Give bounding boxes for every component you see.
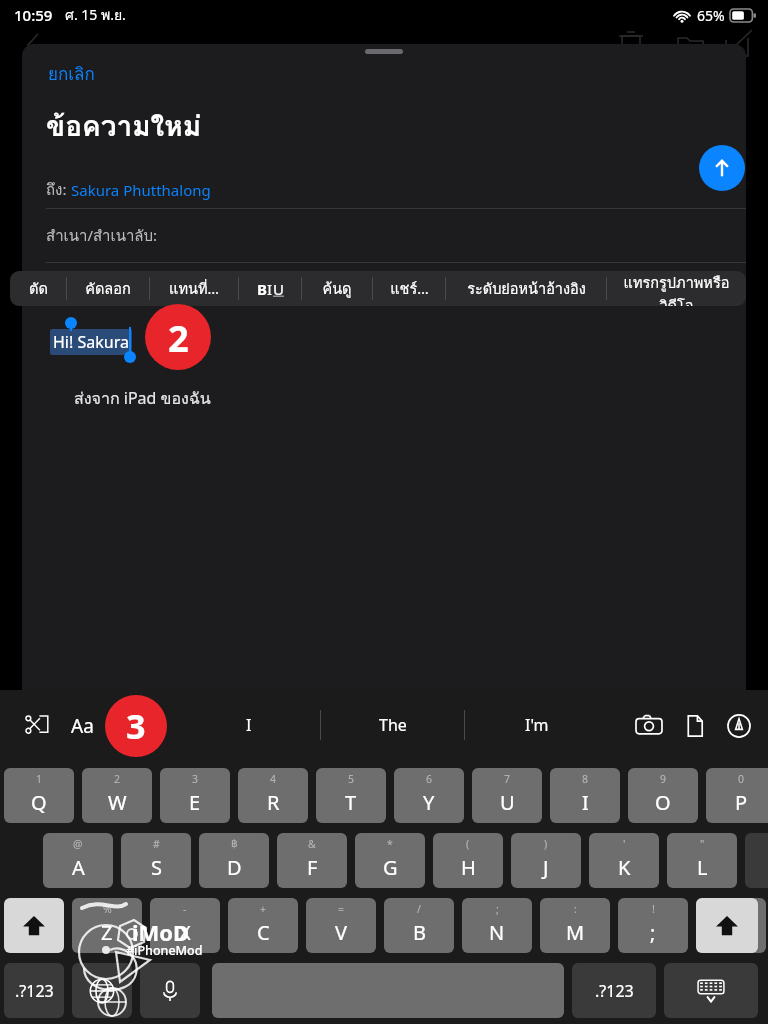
- button[interactable]: 8: [550, 768, 620, 823]
- staticText: I'm: [525, 714, 549, 736]
- button[interactable]: Hide keyboard: [664, 963, 758, 1018]
- button[interactable]: Send: [699, 145, 745, 191]
- staticText: +: [260, 902, 267, 916]
- button[interactable]: @: [43, 833, 113, 888]
- button[interactable]: 2: [82, 768, 152, 823]
- button[interactable]: ): [511, 833, 581, 888]
- staticText: A: [72, 854, 85, 881]
- staticText: M: [566, 919, 585, 946]
- button[interactable]: 9: [628, 768, 698, 823]
- staticText: 3: [126, 703, 146, 749]
- button[interactable]: ยกเลิก: [44, 58, 99, 89]
- button[interactable]: 6: [394, 768, 464, 823]
- staticText: แทรกรูปภาพหรือวิดีโอ: [607, 271, 746, 306]
- button[interactable]: .?123: [572, 963, 656, 1018]
- button[interactable]: ถึง:: [22, 172, 746, 208]
- staticText: ระดับย่อหน้าอ้างอิง: [467, 277, 586, 300]
- button[interactable]: ระดับย่อหน้าอ้างอิง: [446, 271, 606, 306]
- button[interactable]: I'm: [465, 690, 608, 760]
- button[interactable]: !: [618, 898, 688, 953]
- button[interactable]: ?: [696, 898, 766, 953]
- button[interactable]: 0: [706, 768, 768, 823]
- staticText: U: [500, 789, 515, 816]
- staticText: S: [151, 854, 162, 881]
- button[interactable]: 3: [160, 768, 230, 823]
- staticText: Aa: [71, 713, 94, 739]
- button[interactable]: return: [745, 833, 768, 888]
- button[interactable]: ": [667, 833, 737, 888]
- staticText: ': [623, 837, 626, 851]
- button[interactable]: /: [384, 898, 454, 953]
- button[interactable]: =: [306, 898, 376, 953]
- staticText: 2: [114, 772, 121, 786]
- button[interactable]: คัดลอก: [67, 271, 149, 306]
- button[interactable]: #: [121, 833, 191, 888]
- button[interactable]: Switch language: [72, 963, 132, 1018]
- button[interactable]: 5: [316, 768, 386, 823]
- button[interactable]: %: [72, 898, 142, 953]
- staticText: C: [257, 919, 270, 946]
- button[interactable]: Camera: [628, 705, 670, 747]
- button[interactable]: I: [178, 690, 320, 760]
- staticText: คัดลอก: [85, 277, 131, 300]
- button[interactable]: 4: [238, 768, 308, 823]
- button[interactable]: ตัด: [10, 271, 66, 306]
- button[interactable]: สำเนา/สำเนาลับ:: [22, 209, 746, 262]
- staticText: Hi! Sakura: [53, 331, 129, 353]
- button[interactable]: แชร์…: [373, 271, 445, 306]
- staticText: 0: [738, 772, 745, 786]
- staticText: 65%: [697, 6, 725, 25]
- staticText: 4: [270, 772, 277, 786]
- staticText: &: [308, 837, 316, 851]
- button[interactable]: Aa: [62, 706, 102, 746]
- button[interactable]: (: [433, 833, 503, 888]
- button[interactable]: Markup: [718, 705, 760, 747]
- button[interactable]: ;: [462, 898, 532, 953]
- staticText: T: [345, 789, 357, 816]
- staticText: V: [335, 919, 347, 946]
- staticText: .: [728, 919, 734, 946]
- button[interactable]: 7: [472, 768, 542, 823]
- button[interactable]: Shift: [4, 898, 64, 953]
- staticText: Sakura Phutthalong: [71, 180, 211, 200]
- button[interactable]: แทนที่…: [150, 271, 238, 306]
- staticText: 8: [582, 772, 589, 786]
- staticText: :: [574, 902, 577, 916]
- staticText: ": [700, 837, 705, 851]
- staticText: B: [413, 919, 426, 946]
- staticText: F: [307, 854, 318, 881]
- button[interactable]: Hi! Sakura: [50, 329, 132, 355]
- button[interactable]: Document: [674, 705, 716, 747]
- button[interactable]: -: [150, 898, 220, 953]
- button[interactable]: .?123: [4, 963, 64, 1018]
- staticText: I: [267, 279, 273, 299]
- button[interactable]: 1: [4, 768, 74, 823]
- button[interactable]: ค้นดู: [302, 271, 372, 306]
- button[interactable]: ': [589, 833, 659, 888]
- button[interactable]: The: [321, 690, 464, 760]
- staticText: W: [108, 789, 127, 816]
- button[interactable]: *: [355, 833, 425, 888]
- button[interactable]: Cut text: [18, 706, 56, 744]
- staticText: 3: [192, 772, 199, 786]
- button[interactable]: Shift: [696, 898, 758, 953]
- button[interactable]: Space: [212, 963, 564, 1018]
- staticText: 5: [348, 772, 355, 786]
- button[interactable]: B: [239, 271, 301, 306]
- staticText: Q: [31, 789, 47, 816]
- button[interactable]: Dictate: [140, 963, 200, 1018]
- button[interactable]: :: [540, 898, 610, 953]
- staticText: /: [417, 902, 421, 916]
- staticText: I: [582, 789, 589, 816]
- button[interactable]: แทรกรูปภาพหรือวิดีโอ: [607, 271, 746, 306]
- staticText: ): [544, 837, 548, 851]
- button[interactable]: &: [277, 833, 347, 888]
- staticText: ส่งจาก iPad ของฉัน: [74, 386, 211, 411]
- staticText: @: [73, 837, 83, 851]
- staticText: 7: [504, 772, 511, 786]
- staticText: แชร์…: [390, 277, 429, 300]
- button[interactable]: ฿: [199, 833, 269, 888]
- button[interactable]: +: [228, 898, 298, 953]
- staticText: K: [618, 854, 631, 881]
